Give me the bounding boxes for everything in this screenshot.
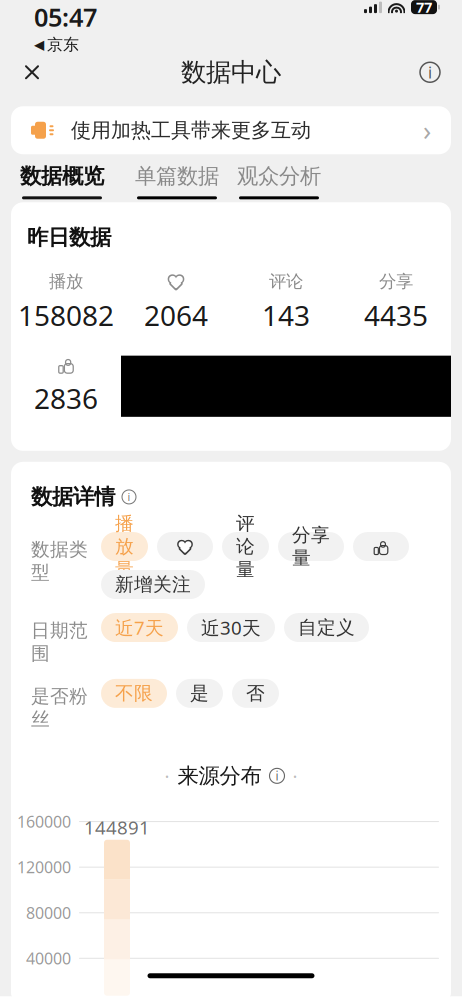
button[interactable]	[353, 532, 409, 561]
staticText: ·	[292, 763, 297, 788]
button[interactable]: 否	[232, 679, 279, 708]
button[interactable]: 分享量	[278, 532, 344, 561]
staticText: 数据中心	[181, 57, 281, 88]
button[interactable]: 近30天	[187, 613, 275, 642]
staticText: 昨日数据	[27, 224, 111, 250]
button[interactable]: 单篇数据	[135, 163, 219, 199]
staticText: 05:47	[34, 0, 97, 34]
staticText: 158082	[18, 296, 114, 334]
staticText: 京东	[47, 35, 79, 54]
staticText: 分享量	[292, 524, 330, 569]
button[interactable]: 播放量	[101, 532, 148, 561]
button[interactable]: 近7天	[101, 613, 178, 642]
staticText: 评论量	[236, 512, 255, 581]
staticText: 数据概览	[20, 163, 104, 189]
button[interactable]: 新增关注	[101, 570, 205, 599]
staticText: i	[127, 490, 130, 504]
button[interactable]: 关闭	[10, 50, 54, 94]
button[interactable]: 不限	[101, 679, 167, 708]
button[interactable]: 自定义	[284, 613, 369, 642]
staticText: 日期范围	[31, 619, 88, 665]
staticText: 数据类型	[31, 538, 88, 584]
staticText: 否	[246, 682, 265, 705]
staticText: 2836	[34, 380, 98, 417]
staticText: ›	[423, 113, 431, 148]
staticText: 单篇数据	[135, 163, 219, 189]
staticText: 不限	[115, 682, 153, 705]
staticText: 80000	[26, 902, 71, 923]
staticText: 是	[190, 682, 209, 705]
button[interactable]: 使用加热工具带来更多互动	[11, 106, 451, 154]
staticText: 近30天	[201, 615, 261, 640]
staticText: 使用加热工具带来更多互动	[71, 118, 311, 143]
staticText: 自定义	[298, 616, 355, 639]
staticText: 4435	[364, 296, 428, 334]
staticText: 新增关注	[115, 573, 191, 596]
staticText: i	[275, 768, 278, 784]
staticText: 是否粉丝	[31, 685, 88, 731]
button[interactable]	[157, 532, 213, 561]
staticText: 120000	[17, 856, 71, 878]
staticText: 160000	[17, 811, 71, 832]
staticText: i	[428, 62, 432, 83]
staticText: 观众分析	[237, 163, 321, 189]
staticText: 播放量	[115, 512, 134, 581]
button[interactable]: 评论量	[222, 532, 269, 561]
staticText: 143	[262, 296, 310, 334]
staticText: ·	[164, 763, 169, 788]
staticText: 分享	[379, 271, 413, 292]
staticText: 77	[416, 0, 432, 17]
button[interactable]: 观众分析	[237, 163, 321, 199]
staticText: 来源分布	[177, 763, 261, 789]
staticText: 40000	[26, 948, 71, 969]
button[interactable]: 数据概览	[20, 163, 104, 199]
staticText: 评论	[269, 271, 303, 292]
button[interactable]: 是	[176, 679, 223, 708]
staticText: 数据详情	[31, 484, 115, 510]
staticText: 近7天	[115, 615, 164, 640]
button[interactable]: 说明	[408, 50, 452, 94]
staticText: 144891	[84, 815, 150, 840]
staticText: ◀	[34, 37, 44, 52]
staticText: 2064	[144, 296, 208, 334]
button[interactable]: 数据详情说明	[122, 490, 136, 504]
staticText: 播放	[49, 271, 83, 292]
